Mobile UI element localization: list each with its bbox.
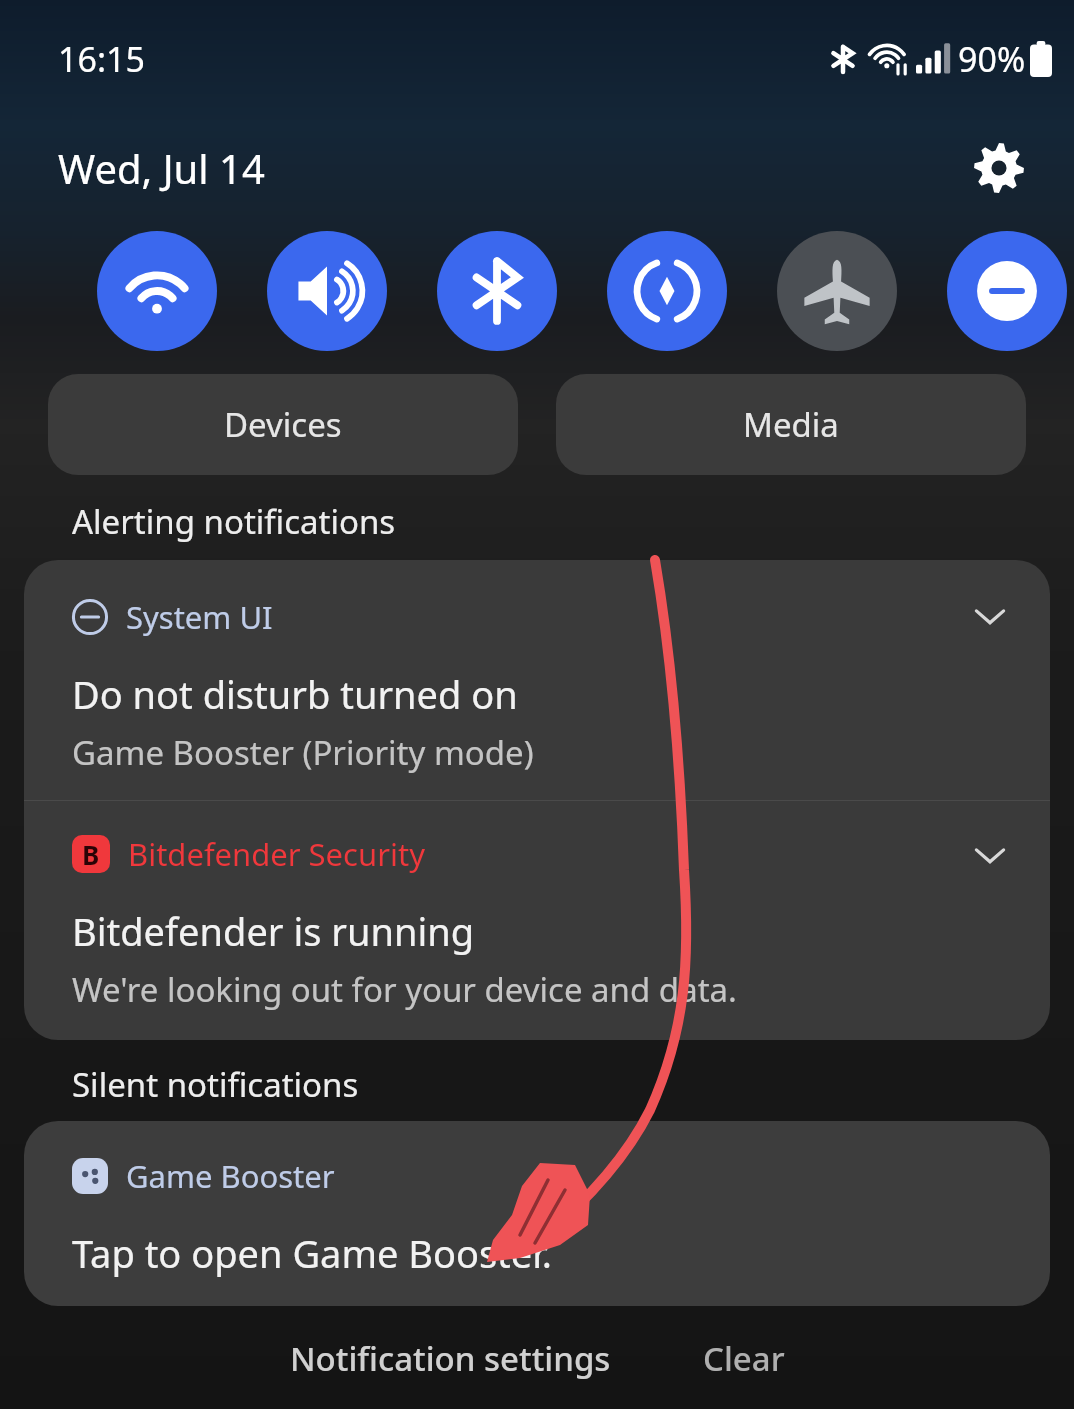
- button[interactable]: Game Booster: [24, 1121, 1050, 1306]
- staticText: We're looking out for your device and da…: [72, 967, 737, 1012]
- button[interactable]: Settings: [968, 137, 1030, 199]
- button[interactable]: B: [24, 801, 1050, 1040]
- button[interactable]: Do not disturb: [947, 231, 1067, 351]
- staticText: Clear: [703, 1336, 785, 1381]
- staticText: Devices: [224, 402, 342, 447]
- staticText: System UI: [126, 596, 273, 638]
- staticText: Bitdefender Security: [128, 833, 425, 875]
- button[interactable]: Auto rotate: [607, 231, 727, 351]
- staticText: Game Booster (Priority mode): [72, 730, 534, 775]
- staticText: Silent notifications: [72, 1062, 359, 1107]
- staticText: 90%: [958, 36, 1026, 82]
- button[interactable]: Devices: [48, 374, 518, 475]
- button[interactable]: Clear: [687, 1328, 801, 1389]
- button[interactable]: Sound: [267, 231, 387, 351]
- button[interactable]: Wi-Fi: [97, 231, 217, 351]
- staticText: Alerting notifications: [72, 499, 396, 544]
- button[interactable]: Notification settings: [274, 1328, 627, 1389]
- staticText: 16:15: [58, 36, 145, 82]
- staticText: Media: [743, 402, 839, 447]
- staticText: Game Booster: [126, 1155, 335, 1197]
- button[interactable]: Expand Bitdefender notification: [958, 823, 1022, 887]
- button[interactable]: Airplane mode: [777, 231, 897, 351]
- staticText: B: [82, 837, 100, 872]
- button[interactable]: System UI: [24, 560, 1050, 800]
- staticText: Do not disturb turned on: [72, 668, 518, 720]
- staticText: Notification settings: [290, 1336, 611, 1381]
- staticText: Wed, Jul 14: [58, 141, 265, 195]
- button[interactable]: Media: [556, 374, 1026, 475]
- button[interactable]: Bluetooth: [437, 231, 557, 351]
- staticText: Tap to open Game Booster.: [72, 1227, 553, 1279]
- button[interactable]: Expand System UI notification: [958, 584, 1022, 648]
- staticText: Bitdefender is running: [72, 905, 475, 957]
